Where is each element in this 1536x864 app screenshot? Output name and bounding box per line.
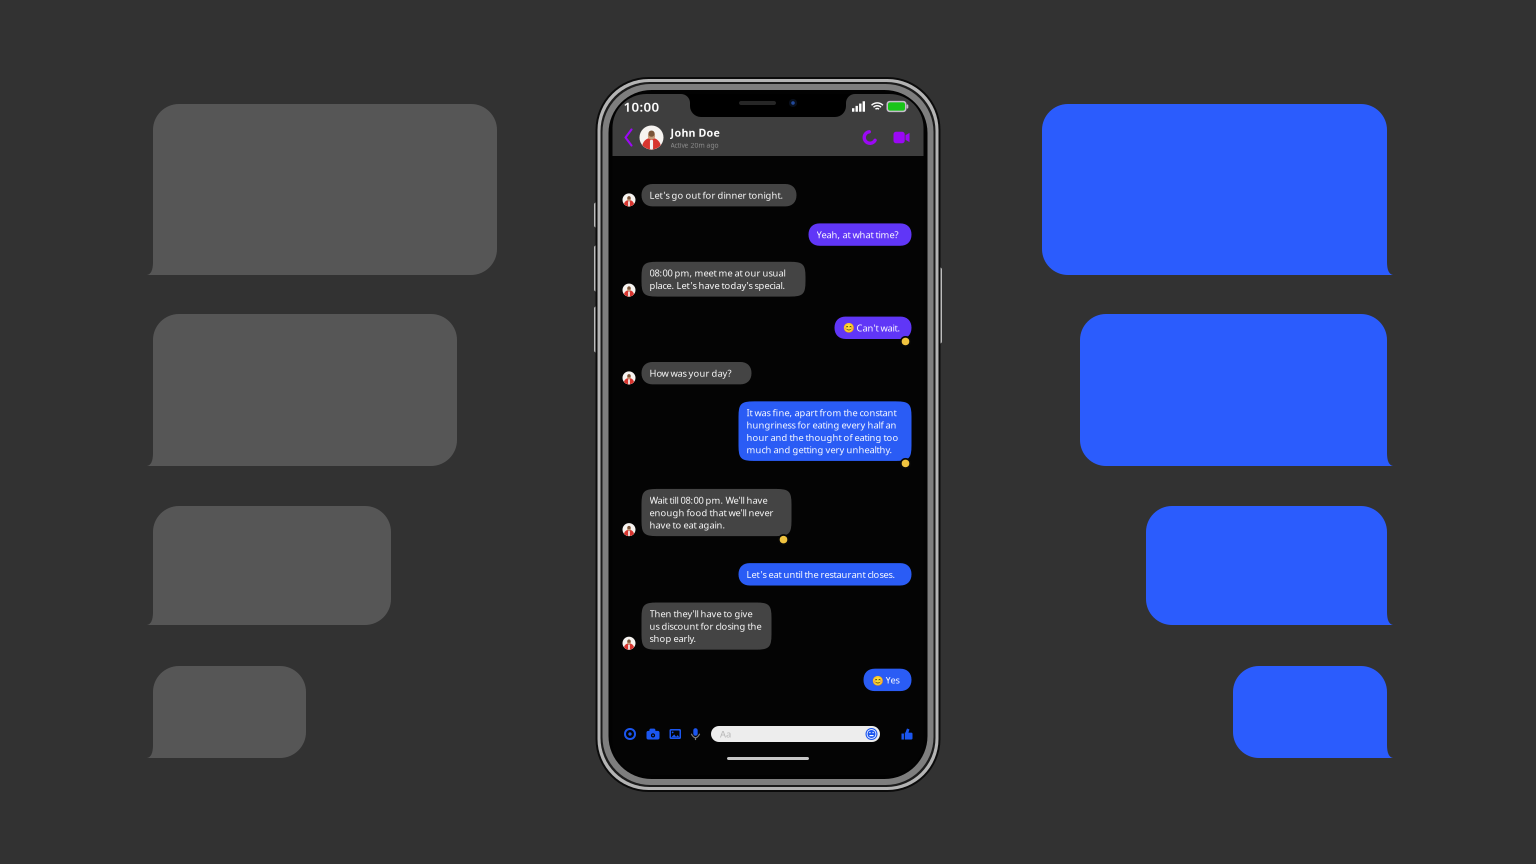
staticText: 😊 Can't wait.	[842, 322, 900, 334]
button[interactable]: Call	[859, 127, 880, 148]
staticText: 08:00 pm, meet me at our usual place. Le…	[649, 267, 785, 292]
button[interactable]: Send like	[901, 728, 912, 739]
staticText: Aa	[720, 728, 731, 740]
staticText: Yeah, at what time?	[816, 228, 898, 241]
button[interactable]: Camera	[646, 728, 659, 739]
staticText: Then they'll have to give us discount fo…	[649, 607, 761, 645]
staticText: How was your day?	[649, 367, 731, 379]
staticText: John Doe	[670, 125, 719, 140]
staticText: Wait till 08:00 pm. We'll have enough fo…	[649, 494, 773, 531]
staticText: 10:00	[623, 98, 659, 115]
staticText: 😊 Yes	[871, 674, 899, 686]
button[interactable]: Video call	[891, 130, 911, 145]
button[interactable]: Photos	[669, 728, 681, 739]
button[interactable]: Open actions	[624, 728, 635, 739]
staticText: Let's eat until the restaurant closes.	[746, 568, 895, 580]
staticText: Active 20m ago	[670, 141, 718, 150]
staticText: It was fine, apart from the constant hun…	[746, 406, 898, 456]
button[interactable]: Voice message	[691, 727, 700, 740]
staticText: Let's go out for dinner tonight.	[649, 189, 783, 201]
button[interactable]: Back	[620, 124, 636, 150]
